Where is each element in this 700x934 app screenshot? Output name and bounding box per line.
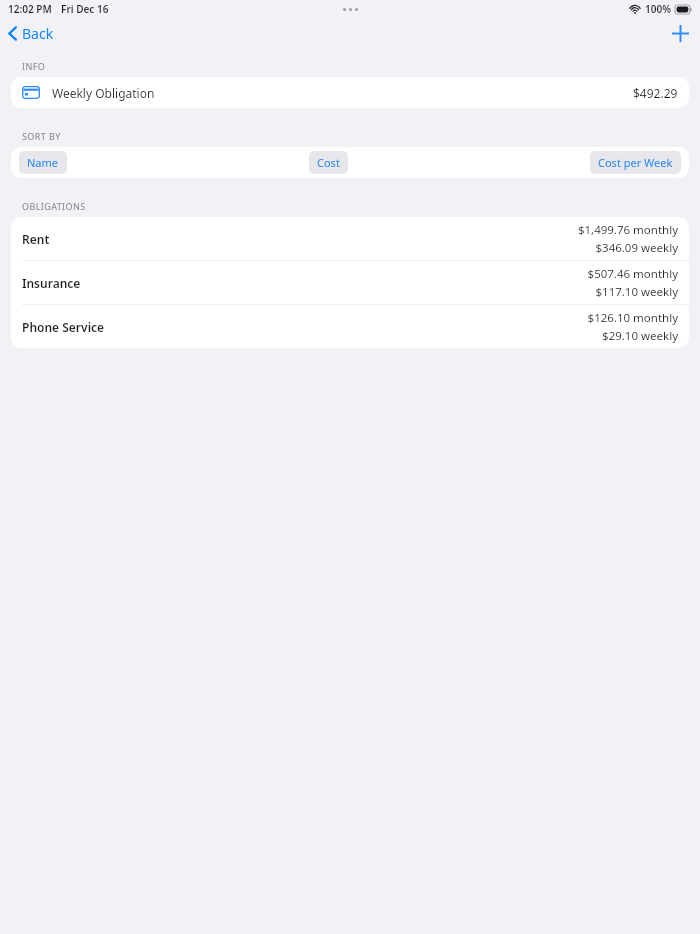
button[interactable]: Back (0, 20, 62, 47)
staticText: $492.29 (633, 85, 678, 101)
staticText: Rent (22, 231, 50, 247)
button[interactable]: Insurance (11, 261, 689, 304)
staticText: $346.09 weekly (595, 240, 678, 256)
staticText: INFO (22, 60, 46, 72)
staticText: Insurance (22, 275, 81, 291)
staticText: SORT BY (22, 130, 61, 142)
staticText: 100% (645, 2, 671, 16)
staticText: Back (22, 24, 54, 43)
button[interactable]: Weekly Obligation (11, 77, 689, 108)
staticText: $29.10 weekly (602, 328, 678, 344)
staticText: Cost per Week (598, 155, 673, 170)
staticText: $117.10 weekly (595, 284, 678, 300)
button[interactable]: Name (19, 151, 67, 174)
staticText: 12:02 PM (8, 2, 52, 16)
staticText: $126.10 monthly (587, 310, 678, 326)
staticText: Name (27, 155, 59, 170)
staticText: Phone Service (22, 319, 105, 335)
button[interactable]: Add obligation (666, 19, 694, 47)
staticText: $1,499.76 monthly (577, 222, 678, 238)
button[interactable]: Phone Service (11, 305, 689, 348)
button[interactable]: Cost per Week (590, 151, 681, 174)
staticText: Cost (317, 155, 340, 170)
staticText: OBLIGATIONS (22, 200, 86, 212)
button[interactable]: Cost (309, 151, 348, 174)
staticText: Fri Dec 16 (61, 2, 109, 16)
staticText: Weekly Obligation (52, 85, 155, 101)
staticText: $507.46 monthly (587, 266, 678, 282)
button[interactable]: Rent (11, 217, 689, 260)
